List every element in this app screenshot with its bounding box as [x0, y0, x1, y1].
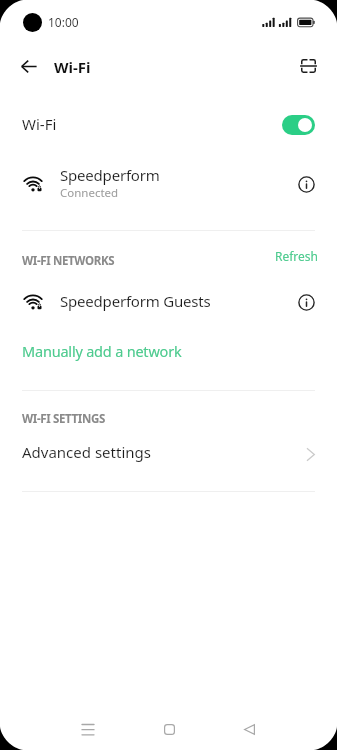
staticText: Wi-Fi [54, 57, 91, 77]
staticText: Connected [60, 185, 119, 201]
button[interactable]: Advanced settings [0, 430, 337, 478]
staticText: Speedperform Guests [60, 291, 211, 311]
staticText: 10:00 [48, 14, 79, 30]
staticText: Wi-Fi [22, 114, 57, 134]
button[interactable]: Back [229, 705, 269, 750]
staticText: Advanced settings [22, 442, 151, 462]
button[interactable]: Recent apps [68, 705, 108, 750]
staticText: Refresh [275, 248, 319, 264]
staticText: Speedperform [60, 165, 160, 185]
button[interactable]: Scan QR code [288, 46, 328, 86]
button[interactable]: Network details [291, 287, 321, 317]
staticText: WI-FI SETTINGS [22, 411, 105, 427]
staticText: WI-FI NETWORKS [22, 253, 115, 269]
button[interactable]: Network details [291, 169, 321, 199]
button[interactable]: Home [149, 705, 189, 750]
staticText: Manually add a network [22, 341, 182, 361]
button[interactable]: Back [9, 46, 49, 86]
button[interactable]: Refresh [270, 241, 324, 271]
button[interactable]: Manually add a network [0, 328, 337, 376]
